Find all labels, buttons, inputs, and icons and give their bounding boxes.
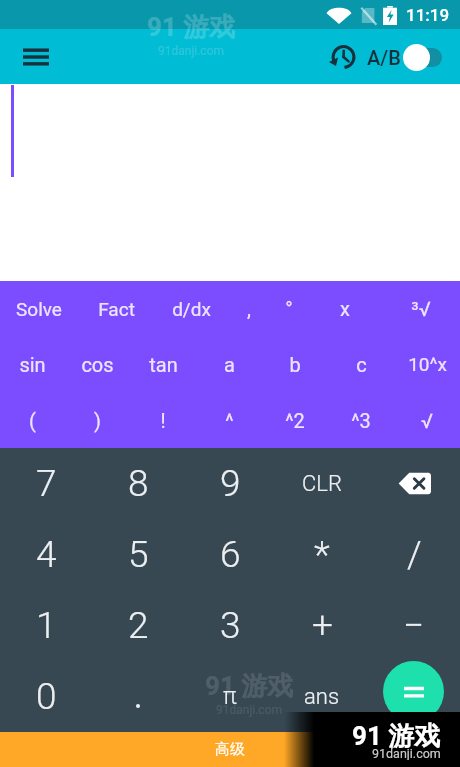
button[interactable]: cos [65, 336, 130, 392]
staticText: ° [285, 297, 293, 320]
button[interactable]: 6 [184, 519, 276, 590]
button[interactable]: 4 [0, 519, 92, 590]
staticText: + [312, 604, 333, 647]
staticText: ^2 [285, 409, 305, 432]
button[interactable]: , [227, 281, 270, 336]
button[interactable]: ( [0, 392, 65, 448]
staticText: CLR [302, 471, 342, 497]
button[interactable]: ° [270, 281, 308, 336]
button[interactable]: / [368, 519, 460, 590]
button[interactable]: ^2 [262, 392, 328, 448]
staticText: 10^x [408, 353, 447, 375]
staticText: ) [94, 409, 101, 432]
staticText: 11:19 [406, 5, 450, 25]
button[interactable]: c [328, 336, 394, 392]
staticText: / [407, 533, 422, 576]
staticText: 1 [36, 604, 57, 647]
button[interactable]: A/B toggle [403, 42, 442, 72]
staticText: 高级 [215, 740, 245, 759]
button[interactable]: Fact [77, 281, 155, 336]
button[interactable]: 7 [0, 448, 92, 519]
button[interactable]: a [196, 336, 262, 392]
staticText: √ [421, 409, 433, 432]
button[interactable]: Equals [383, 661, 444, 722]
button[interactable]: 0 [0, 661, 92, 732]
staticText: 7 [36, 462, 57, 505]
staticText: Fact [98, 298, 135, 320]
staticText: 91danji.com [372, 746, 441, 760]
button[interactable]: 8 [92, 448, 184, 519]
button[interactable]: tan [130, 336, 196, 392]
button[interactable]: ^ [196, 392, 262, 448]
button[interactable]: ) [65, 392, 130, 448]
staticText: 91 游戏 [205, 670, 294, 703]
staticText: 4 [36, 533, 57, 576]
staticText: d/dx [172, 298, 211, 320]
staticText: 91danji.com [158, 44, 225, 58]
button[interactable]: ^3 [328, 392, 394, 448]
button[interactable]: 5 [92, 519, 184, 590]
button[interactable]: + [276, 590, 368, 661]
button[interactable]: History [325, 40, 359, 74]
button[interactable]: d/dx [155, 281, 227, 336]
button[interactable]: 1 [0, 590, 92, 661]
button[interactable]: √ [394, 392, 460, 448]
staticText: 6 [220, 533, 241, 576]
button[interactable]: 2 [92, 590, 184, 661]
staticText: 91danji.com [216, 703, 283, 717]
staticText: b [289, 353, 301, 376]
button[interactable] [92, 661, 184, 732]
staticText: A/B [367, 46, 401, 69]
staticText: c [356, 353, 367, 376]
button[interactable]: CLR [276, 448, 368, 519]
button[interactable]: ans [276, 661, 368, 732]
button[interactable]: x [308, 281, 382, 336]
button[interactable]: ! [130, 392, 196, 448]
staticText: x [340, 297, 350, 320]
button[interactable]: 3 [184, 590, 276, 661]
staticText: 5 [128, 533, 149, 576]
button[interactable]: Menu [12, 33, 60, 81]
staticText: ( [29, 409, 36, 432]
button[interactable] [368, 448, 460, 519]
staticText: Solve [16, 298, 62, 320]
staticText: sin [19, 353, 46, 376]
staticText: 2 [128, 604, 149, 647]
staticText: ^ [225, 409, 234, 432]
button[interactable]: * [276, 519, 368, 590]
staticText: ³√ [411, 297, 431, 320]
button[interactable] [368, 661, 460, 732]
staticText: cos [81, 353, 114, 376]
button[interactable]: 9 [184, 448, 276, 519]
staticText: 8 [128, 462, 149, 505]
staticText: π [223, 683, 237, 710]
staticText: , [247, 297, 251, 320]
button[interactable]: b [262, 336, 328, 392]
staticText: * [314, 533, 330, 576]
staticText: 91 游戏 [352, 720, 441, 753]
button[interactable]: − [368, 590, 460, 661]
staticText: 9 [220, 462, 241, 505]
staticText: 91 游戏 [147, 11, 236, 44]
staticText: 3 [220, 604, 241, 647]
button[interactable]: sin [0, 336, 65, 392]
staticText: ^3 [351, 409, 371, 432]
button[interactable]: 10^x [394, 336, 460, 392]
button[interactable]: 高级 [0, 732, 460, 767]
button[interactable]: ³√ [382, 281, 460, 336]
staticText: a [224, 353, 235, 376]
button[interactable]: π [184, 661, 276, 732]
staticText: ans [304, 684, 340, 710]
staticText: − [403, 604, 425, 647]
staticText: tan [149, 353, 178, 376]
staticText: 0 [36, 675, 57, 718]
staticText: ! [160, 409, 166, 432]
button[interactable]: Solve [0, 281, 77, 336]
